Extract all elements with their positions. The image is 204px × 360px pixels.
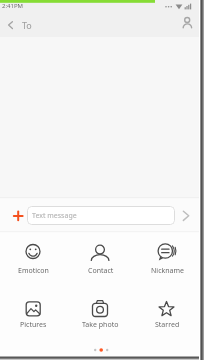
button[interactable] [176,202,199,229]
button[interactable] [0,12,40,37]
button[interactable] [134,288,201,342]
staticText: To [22,19,32,31]
button[interactable] [0,288,67,342]
staticText: Starred [155,320,180,330]
staticText: Take photo [82,320,119,330]
button[interactable] [67,288,134,342]
button[interactable] [172,12,202,37]
staticText: Pictures [20,320,47,330]
button[interactable] [67,234,134,288]
staticText: Text message [32,211,77,221]
button[interactable] [0,234,67,288]
staticText: Nickname [151,266,184,276]
button[interactable] [5,202,27,229]
button[interactable] [134,234,201,288]
button[interactable]: Text message [27,206,175,225]
staticText: Emoticon [18,266,49,276]
staticText: Contact [88,266,114,276]
staticText: 2:41PM [2,2,23,10]
